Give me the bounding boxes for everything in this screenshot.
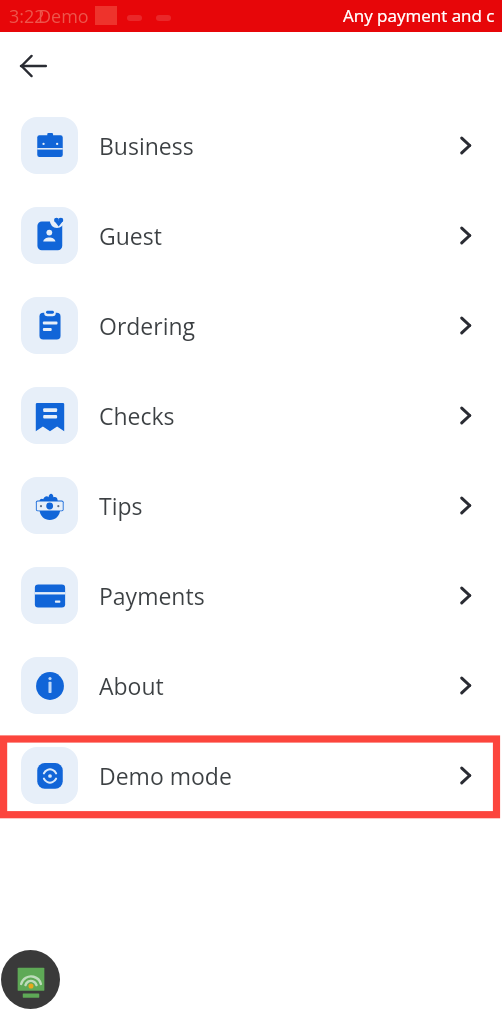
- staticText: Checks: [99, 400, 175, 431]
- staticText: Business: [99, 130, 194, 161]
- staticText: Guest: [99, 220, 162, 251]
- button[interactable]: About: [0, 640, 502, 730]
- button[interactable]: Payments: [0, 550, 502, 640]
- button[interactable]: Back: [9, 42, 57, 90]
- staticText: About: [99, 670, 164, 701]
- staticText: Tips: [99, 490, 143, 521]
- staticText: 3:22: [9, 4, 45, 29]
- button[interactable]: Ordering: [0, 280, 502, 370]
- button[interactable]: Tips: [0, 460, 502, 550]
- staticText: Payments: [99, 580, 205, 611]
- staticText: Demo: [38, 4, 89, 29]
- button[interactable]: Demo mode: [0, 730, 502, 820]
- button[interactable]: Cast screen: [1, 950, 60, 1009]
- staticText: Any payment and c: [343, 4, 495, 27]
- button[interactable]: Guest: [0, 190, 502, 280]
- button[interactable]: Checks: [0, 370, 502, 460]
- staticText: Demo mode: [99, 760, 232, 791]
- staticText: Ordering: [99, 310, 196, 341]
- button[interactable]: Business: [0, 100, 502, 190]
